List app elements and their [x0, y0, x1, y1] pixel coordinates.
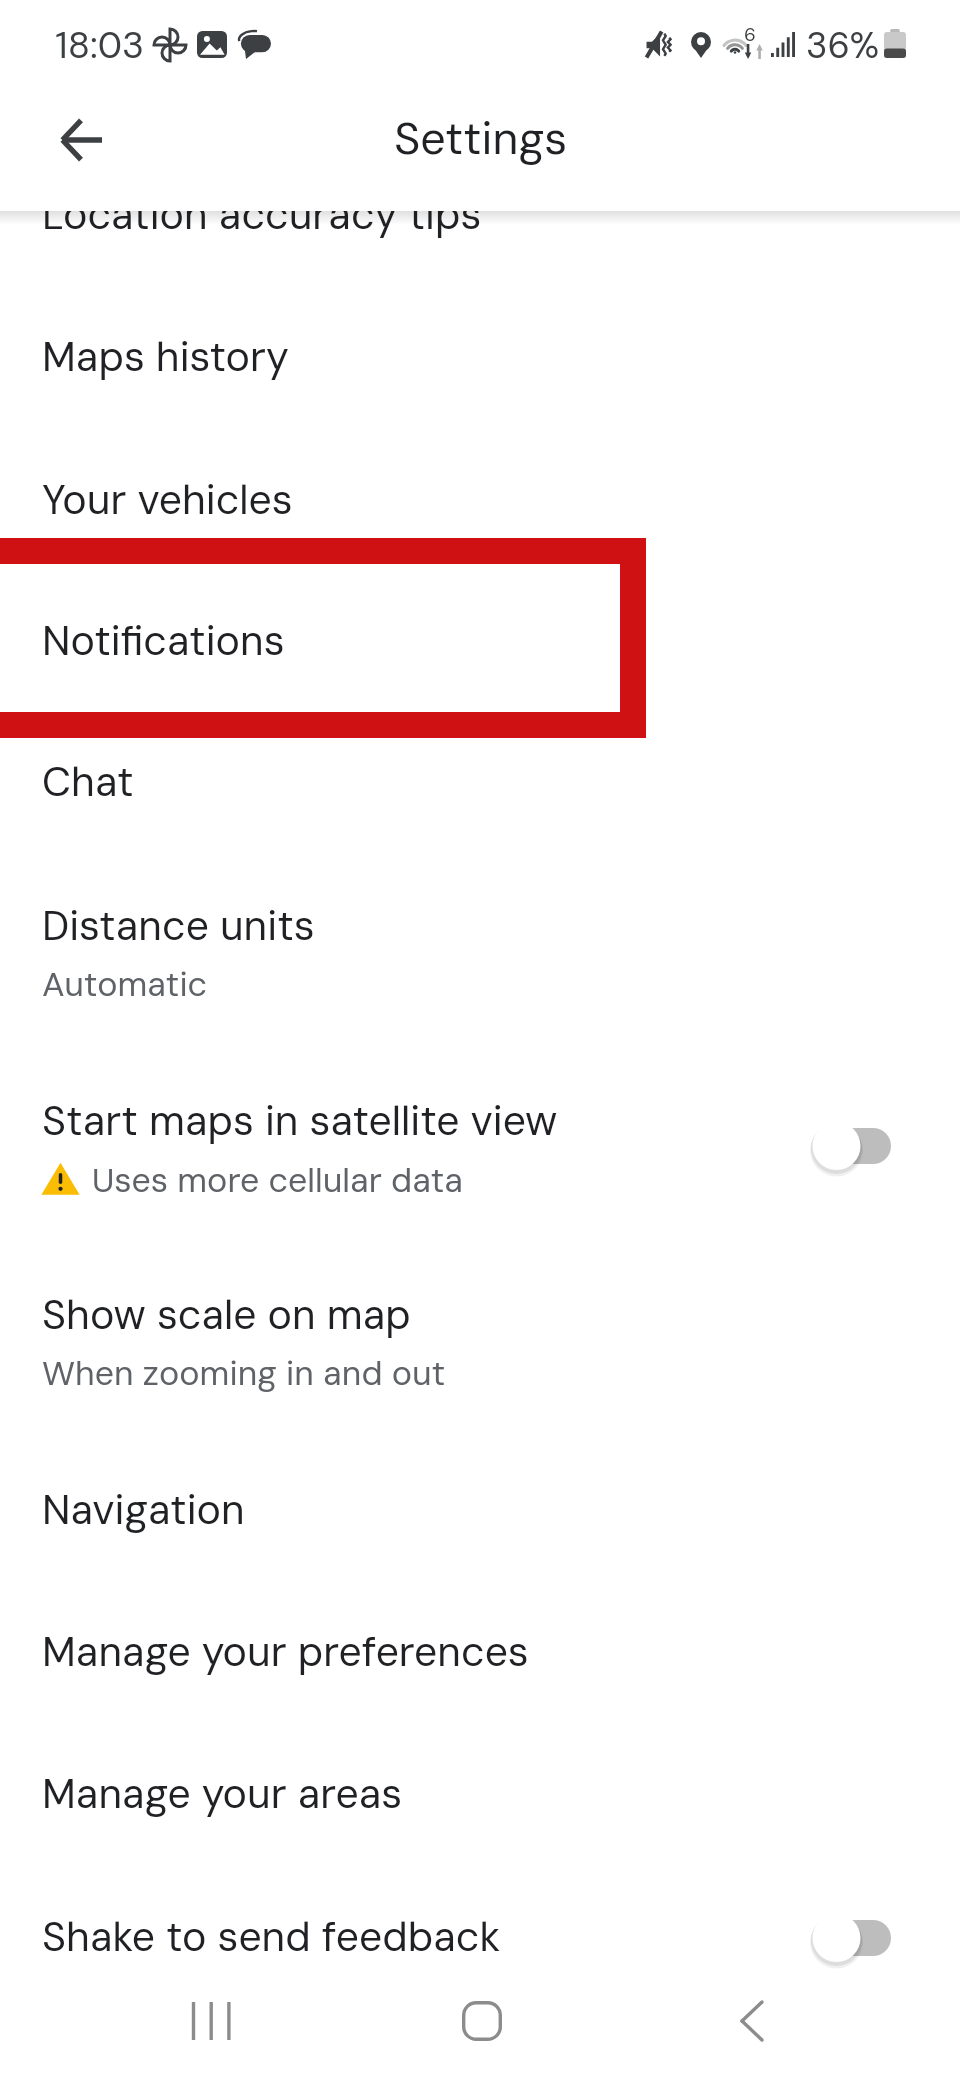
button[interactable]: Navigation: [0, 1437, 960, 1581]
staticText: 6: [744, 22, 756, 47]
staticText: Shake to send feedback: [42, 1910, 501, 1963]
staticText: Distance units: [42, 899, 315, 952]
staticText: 36%: [806, 22, 880, 69]
button[interactable]: Navigate up: [37, 96, 125, 184]
button[interactable]: Manage your preferences: [0, 1579, 960, 1719]
button[interactable]: Recent apps: [152, 1964, 262, 2075]
button[interactable]: Maps history: [0, 284, 960, 428]
staticText: 18:03: [55, 21, 145, 69]
staticText: Manage your preferences: [42, 1625, 529, 1678]
staticText: Your vehicles: [42, 473, 293, 526]
button[interactable]: Toggle Start maps in satellite view: [790, 1098, 918, 1194]
staticText: Location accuracy tips: [42, 211, 482, 241]
staticText: Uses more cellular data: [92, 1158, 464, 1202]
button[interactable]: Your vehicles: [0, 427, 960, 569]
button[interactable]: Start maps in satellite view: [0, 1048, 960, 1239]
staticText: Settings: [394, 109, 568, 168]
staticText: Start maps in satellite view: [42, 1094, 558, 1147]
button[interactable]: Manage your areas: [0, 1721, 960, 1864]
staticText: When zooming in and out: [42, 1351, 446, 1395]
staticText: Notifications: [42, 614, 285, 667]
staticText: Navigation: [42, 1483, 245, 1536]
button[interactable]: Location accuracy tips: [0, 211, 960, 326]
button[interactable]: Show scale on map: [0, 1242, 960, 1437]
button[interactable]: Chat: [0, 709, 960, 855]
button[interactable]: Shake to send feedback: [0, 1864, 960, 1969]
button[interactable]: Distance units: [0, 853, 960, 1049]
staticText: Chat: [42, 755, 134, 808]
button[interactable]: Home: [427, 1964, 537, 2075]
button[interactable]: Notifications: [0, 568, 960, 708]
button[interactable]: Toggle Shake to send feedback: [790, 1890, 918, 1969]
staticText: Automatic: [42, 962, 208, 1006]
staticText: Manage your areas: [42, 1767, 403, 1820]
staticText: Show scale on map: [42, 1288, 411, 1341]
button[interactable]: Back: [697, 1964, 807, 2075]
staticText: Maps history: [42, 330, 289, 383]
